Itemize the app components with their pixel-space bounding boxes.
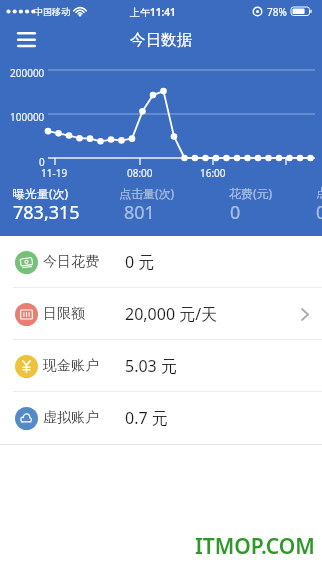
staticText: 0 [316,200,322,225]
staticText: 中国移动 [34,6,70,17]
staticText: 16:00 [200,166,226,179]
staticText: 0 [39,155,45,169]
staticText: 200000 [10,66,45,80]
staticText: 花费(元) [229,185,273,201]
staticText: 曝光量(次) [13,185,69,201]
staticText: 现金账户 [43,357,99,375]
staticText: 点击均价 [316,185,322,200]
staticText: 日限额 [43,305,85,323]
staticText: 78% [267,5,287,19]
staticText: 今日数据 [130,30,192,50]
staticText: 801 [124,200,155,225]
staticText: 上午11:41 [130,5,176,19]
staticText: ITMOP.COM [195,532,315,561]
staticText: 100000 [10,110,45,124]
staticText: 5.03 元 [125,355,177,377]
staticText: 虚拟账户 [43,409,99,427]
staticText: 0.7 元 [125,407,168,429]
staticText: 08:00 [127,166,153,179]
staticText: 20,000 元/天 [125,303,218,325]
staticText: 点击量(次) [119,185,175,201]
staticText: 今日花费 [43,253,99,271]
staticText: 0 [230,200,241,225]
staticText: 11-19 [41,166,68,179]
staticText: 783,315 [13,200,80,225]
staticText: 0 元 [125,251,155,273]
